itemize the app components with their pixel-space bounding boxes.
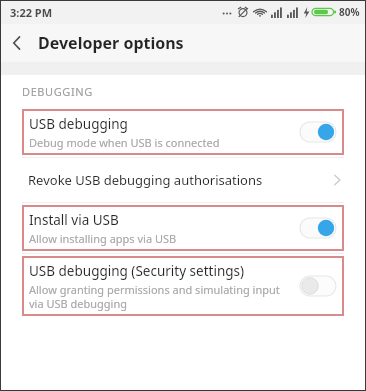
staticText: USB debugging (Security settings) bbox=[29, 262, 245, 280]
button[interactable]: Back bbox=[0, 26, 34, 60]
staticText: Debug mode when USB is connected bbox=[29, 135, 220, 150]
staticText: 80% bbox=[339, 5, 360, 19]
button[interactable]: Off bbox=[300, 276, 336, 296]
staticText: 3:22 PM bbox=[10, 5, 53, 20]
staticText: Allow installing apps via USB bbox=[29, 231, 177, 246]
button[interactable]: USB debugging (Security settings) bbox=[22, 256, 344, 316]
button[interactable]: USB debugging bbox=[22, 109, 344, 155]
staticText: USB debugging bbox=[29, 115, 128, 133]
staticText: DEBUGGING bbox=[22, 84, 93, 99]
button[interactable]: On bbox=[300, 122, 336, 142]
staticText: Install via USB bbox=[29, 211, 119, 229]
button[interactable]: Install via USB bbox=[22, 205, 344, 251]
staticText: Revoke USB debugging authorisations bbox=[28, 171, 263, 189]
staticText: Allow granting permissions and simulatin… bbox=[29, 282, 280, 311]
button[interactable]: On bbox=[300, 218, 336, 238]
staticText: Developer options bbox=[38, 32, 184, 54]
button[interactable]: Revoke USB debugging authorisations bbox=[0, 158, 366, 202]
